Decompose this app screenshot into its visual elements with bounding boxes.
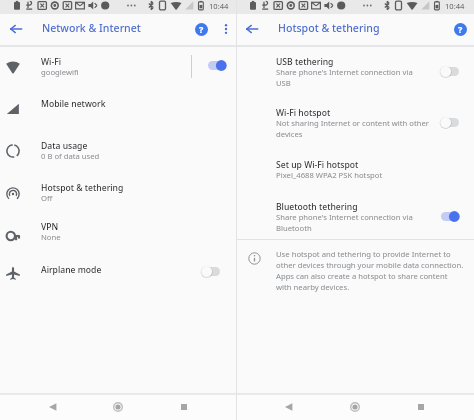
button[interactable]: Back [242,19,262,39]
staticText: ? [458,23,463,35]
button[interactable] [0,216,236,243]
staticText: Bluetooth tethering [276,201,358,213]
button[interactable]: Back [40,395,66,418]
button[interactable] [0,177,236,204]
button[interactable] [236,154,474,192]
button[interactable]: Toggle off [201,265,221,278]
staticText: Wi-Fi hotspot [276,107,331,119]
staticText: Data usage [41,140,88,152]
button[interactable] [0,51,236,78]
staticText: Share phone's Internet connection via Bl… [276,212,429,234]
button[interactable]: Back [276,395,302,418]
staticText: Pixel_4688 WPA2 PSK hotspot [276,170,383,180]
button[interactable] [0,135,236,162]
button[interactable]: Help [191,19,211,39]
staticText: Off [41,193,53,203]
staticText: Hotspot & tethering [278,21,380,35]
staticText: Not sharing Internet or content with oth… [276,118,429,140]
button[interactable]: Recents [408,395,434,418]
button[interactable] [0,259,236,279]
button[interactable]: Help [450,19,470,39]
staticText: Wi-Fi [41,56,62,68]
button[interactable]: Toggle on [440,210,460,223]
button[interactable]: Recents [171,395,197,418]
staticText: Share phone's Internet connection via US… [276,67,429,89]
button[interactable] [236,51,474,89]
staticText: Set up Wi-Fi hotspot [276,159,359,171]
staticText: Network & Internet [42,21,141,35]
button[interactable]: Toggle off [440,116,460,129]
button[interactable] [0,93,236,113]
staticText: Mobile network [41,98,106,110]
staticText: Airplane mode [41,264,102,276]
staticText: Hotspot & tethering [41,182,124,194]
staticText: ? [199,23,204,35]
staticText: 10:44 [445,1,465,11]
button[interactable]: More options [216,19,236,39]
button[interactable]: Back [6,19,26,39]
staticText: googlewifi [41,67,79,77]
button[interactable] [236,196,474,234]
button[interactable]: Home [105,395,131,418]
button[interactable]: Toggle off [440,65,460,78]
staticText: 10:44 [209,1,229,11]
staticText: VPN [41,221,59,233]
button[interactable]: Toggle on [207,59,227,72]
button[interactable] [236,102,474,140]
staticText: Use hotspot and tethering to provide Int… [276,249,464,293]
staticText: USB tethering [276,56,334,68]
button[interactable]: Home [342,395,368,418]
staticText: 0 B of data used [41,151,100,161]
staticText: None [41,232,61,242]
